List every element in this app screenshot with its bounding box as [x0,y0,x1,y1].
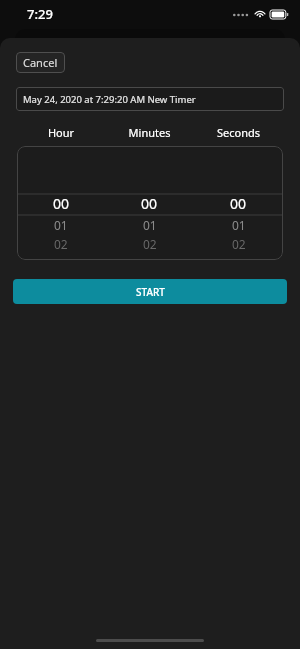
staticText: 01 [54,217,68,233]
staticText: Hour [17,125,105,140]
button[interactable]: START [13,279,287,304]
staticText: 03 [232,255,246,260]
staticText: 02 [143,236,157,252]
staticText: 00 [141,194,158,213]
staticText: Seconds [194,125,283,140]
staticText: 01 [143,217,157,233]
staticText: Minutes [105,125,194,140]
staticText: 03 [54,255,68,260]
button[interactable]: Cancel [16,52,65,73]
staticText: 01 [232,217,246,233]
staticText: Cancel [23,55,58,70]
staticText: 00 [230,194,247,213]
staticText: 7:29 [27,5,53,23]
staticText: 02 [232,236,246,252]
staticText: 02 [54,236,68,252]
staticText: 00 [53,194,70,213]
staticText: 03 [143,255,157,260]
staticText: May 24, 2020 at 7:29:20 AM New Timer [23,93,196,106]
staticText: START [136,285,165,299]
button[interactable]: May 24, 2020 at 7:29:20 AM New Timer [16,87,284,111]
button[interactable]: 00 [17,146,283,260]
